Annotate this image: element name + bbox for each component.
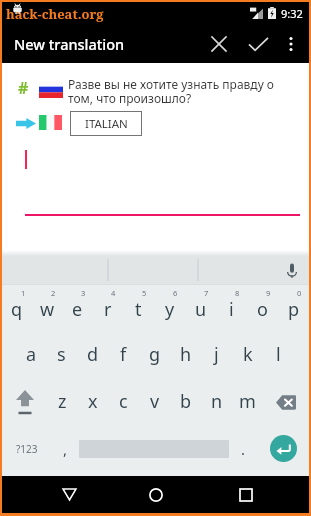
- staticText: 0: [297, 288, 302, 298]
- staticText: z: [58, 389, 67, 414]
- button[interactable]: Home: [136, 476, 176, 513]
- staticText: 2: [51, 288, 56, 298]
- button[interactable]: j: [201, 332, 232, 379]
- staticText: a: [26, 342, 37, 367]
- staticText: ?123: [16, 442, 38, 456]
- button[interactable]: 1: [2, 285, 32, 332]
- staticText: .: [241, 439, 246, 459]
- button[interactable]: 2: [32, 285, 62, 332]
- button[interactable]: v: [139, 379, 170, 426]
- button[interactable]: s: [46, 332, 77, 379]
- staticText: n: [211, 389, 223, 414]
- staticText: l: [276, 342, 281, 367]
- staticText: Разве вы не хотите узнать правду о том, …: [68, 76, 300, 107]
- button[interactable]: 0: [278, 285, 309, 332]
- button[interactable]: 3: [62, 285, 92, 332]
- button[interactable]: 4: [92, 285, 123, 332]
- button[interactable]: z: [47, 379, 77, 426]
- staticText: m: [239, 389, 256, 414]
- staticText: 3: [81, 288, 86, 298]
- staticText: k: [243, 342, 253, 367]
- button[interactable]: 8: [216, 285, 247, 332]
- button[interactable]: ITALIAN: [70, 111, 142, 136]
- button[interactable]: .: [229, 426, 257, 473]
- button[interactable]: c: [108, 379, 139, 426]
- button[interactable]: h: [170, 332, 201, 379]
- staticText: #: [18, 77, 29, 99]
- staticText: t: [135, 297, 142, 322]
- staticText: 6: [173, 288, 178, 298]
- button[interactable]: Back: [49, 476, 89, 513]
- staticText: d: [87, 342, 99, 367]
- staticText: 1: [21, 288, 26, 298]
- button[interactable]: k: [232, 332, 263, 379]
- staticText: g: [149, 342, 161, 367]
- button[interactable]: Backspace: [263, 379, 309, 426]
- staticText: b: [180, 389, 192, 414]
- button[interactable]: b: [170, 379, 201, 426]
- staticText: New translation: [14, 34, 202, 54]
- staticText: ,: [63, 439, 68, 459]
- button[interactable]: n: [201, 379, 232, 426]
- staticText: u: [195, 297, 207, 322]
- staticText: hack-cheat.org: [6, 5, 104, 23]
- staticText: ITALIAN: [85, 116, 128, 132]
- button[interactable]: f: [108, 332, 139, 379]
- button[interactable]: m: [232, 379, 263, 426]
- button[interactable]: 7: [185, 285, 216, 332]
- staticText: h: [180, 342, 192, 367]
- staticText: x: [88, 389, 98, 414]
- button[interactable]: Close: [202, 27, 236, 61]
- staticText: 9:32: [281, 6, 303, 21]
- staticText: w: [40, 297, 55, 322]
- staticText: 8: [235, 288, 240, 298]
- staticText: i: [229, 297, 234, 322]
- staticText: 4: [111, 288, 116, 298]
- button[interactable]: ,: [51, 426, 79, 473]
- staticText: y: [165, 297, 175, 322]
- button[interactable]: Shift: [2, 379, 47, 426]
- staticText: p: [288, 297, 300, 322]
- button[interactable]: d: [77, 332, 108, 379]
- staticText: f: [120, 342, 127, 367]
- button[interactable]: Recents: [226, 476, 266, 513]
- button[interactable]: 9: [247, 285, 278, 332]
- button[interactable]: 6: [154, 285, 185, 332]
- staticText: 5: [142, 288, 147, 298]
- staticText: 9: [266, 288, 271, 298]
- staticText: j: [214, 342, 219, 367]
- button[interactable]: a: [16, 332, 46, 379]
- staticText: r: [104, 297, 112, 322]
- button[interactable]: Voice input: [281, 259, 303, 281]
- button[interactable]: x: [77, 379, 108, 426]
- button[interactable]: Done: [241, 27, 275, 61]
- staticText: e: [72, 297, 83, 322]
- button[interactable]: Enter: [257, 426, 309, 473]
- button[interactable]: l: [263, 332, 294, 379]
- staticText: q: [11, 297, 23, 322]
- staticText: s: [57, 342, 66, 367]
- staticText: 7: [204, 288, 209, 298]
- staticText: o: [257, 297, 268, 322]
- button[interactable]: ?123: [2, 426, 51, 473]
- button[interactable]: g: [139, 332, 170, 379]
- staticText: v: [150, 389, 160, 414]
- button[interactable]: More options: [276, 29, 306, 59]
- button[interactable]: Space: [79, 426, 229, 473]
- button[interactable]: 5: [123, 285, 154, 332]
- staticText: c: [119, 389, 128, 414]
